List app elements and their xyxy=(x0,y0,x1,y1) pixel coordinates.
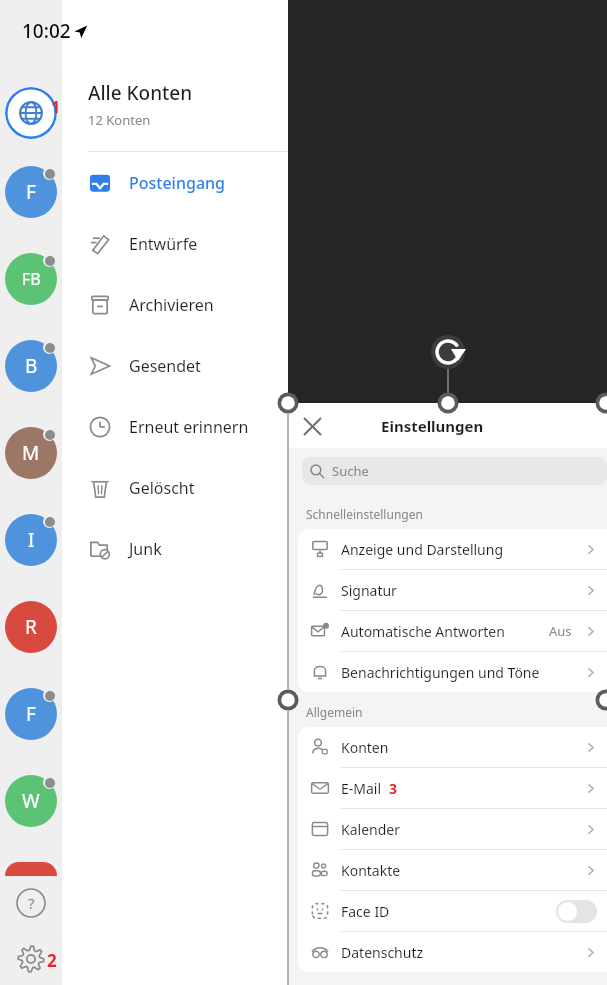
button[interactable]: Alle Konten xyxy=(5,87,57,139)
button[interactable]: R xyxy=(5,601,57,653)
button[interactable]: Anzeige und Darstellung xyxy=(298,529,607,569)
button[interactable]: Junk xyxy=(62,518,288,579)
staticText: 1 xyxy=(51,96,61,118)
staticText: Datenschutz xyxy=(341,943,424,962)
staticText: Erneut erinnern xyxy=(129,416,249,438)
staticText: Einstellungen xyxy=(381,416,484,436)
button[interactable]: Einstellungen xyxy=(14,942,48,976)
staticText: Kontakte xyxy=(341,861,401,880)
button[interactable]: Archivieren xyxy=(62,274,288,335)
button[interactable]: M xyxy=(5,427,57,479)
button[interactable]: I xyxy=(5,514,57,566)
button[interactable]: B xyxy=(5,340,57,392)
staticText: 2 xyxy=(47,949,57,972)
button[interactable]: W xyxy=(5,775,57,827)
staticText: F xyxy=(26,179,36,205)
button[interactable]: Konten xyxy=(298,727,607,767)
staticText: Aus xyxy=(549,622,572,640)
button[interactable]: F xyxy=(5,688,57,740)
button[interactable]: FB xyxy=(5,253,57,305)
button[interactable]: Posteingang xyxy=(62,152,288,213)
staticText: Allgemein xyxy=(306,704,363,720)
staticText: Junk xyxy=(129,538,162,560)
staticText: Benachrichtigungen und Töne xyxy=(341,663,540,682)
staticText: F xyxy=(26,701,36,727)
staticText: B xyxy=(25,353,38,379)
button[interactable]: Face ID umschalten xyxy=(556,900,597,923)
button[interactable]: Schließen xyxy=(294,408,330,444)
staticText: 3 xyxy=(389,779,398,798)
staticText: Archivieren xyxy=(129,294,214,316)
button[interactable]: Gesendet xyxy=(62,335,288,396)
button[interactable]: E-Mail xyxy=(298,768,607,808)
button[interactable]: Gelöscht xyxy=(62,457,288,518)
button[interactable]: Suche xyxy=(302,457,607,485)
button[interactable]: Automatische Antworten xyxy=(298,611,607,651)
staticText: M xyxy=(22,440,40,466)
staticText: 10:02 xyxy=(22,18,71,44)
staticText: FB xyxy=(22,268,41,290)
button[interactable]: Entwürfe xyxy=(62,213,288,274)
staticText: Posteingang xyxy=(129,172,226,194)
staticText: Automatische Antworten xyxy=(341,622,505,641)
button[interactable]: Signatur xyxy=(298,570,607,610)
button[interactable]: Kalender xyxy=(298,809,607,849)
staticText: Face ID xyxy=(341,902,390,921)
button[interactable]: Kontakte xyxy=(298,850,607,890)
staticText: Suche xyxy=(332,462,369,480)
staticText: Kalender xyxy=(341,820,400,839)
button[interactable]: Alle Konten xyxy=(62,80,288,141)
staticText: Entwürfe xyxy=(129,233,198,255)
staticText: Signatur xyxy=(341,581,397,600)
button[interactable]: Face ID xyxy=(298,891,607,931)
button[interactable]: Benachrichtigungen und Töne xyxy=(298,652,607,692)
button[interactable]: Datenschutz xyxy=(298,932,607,972)
staticText: ? xyxy=(28,893,35,913)
button[interactable]: F xyxy=(5,166,57,218)
staticText: Anzeige und Darstellung xyxy=(341,540,504,559)
staticText: W xyxy=(22,788,40,814)
staticText: Alle Konten xyxy=(88,80,193,106)
staticText: Konten xyxy=(341,738,389,757)
button[interactable]: Erneut erinnern xyxy=(62,396,288,457)
staticText: E-Mail xyxy=(341,779,382,798)
staticText: Schnelleinstellungen xyxy=(306,506,423,522)
staticText: I xyxy=(28,527,35,553)
staticText: 12 Konten xyxy=(88,111,151,129)
staticText: Gelöscht xyxy=(129,477,195,499)
button[interactable]: Hilfe xyxy=(14,886,48,920)
staticText: R xyxy=(25,614,37,640)
staticText: Gesendet xyxy=(129,355,201,377)
